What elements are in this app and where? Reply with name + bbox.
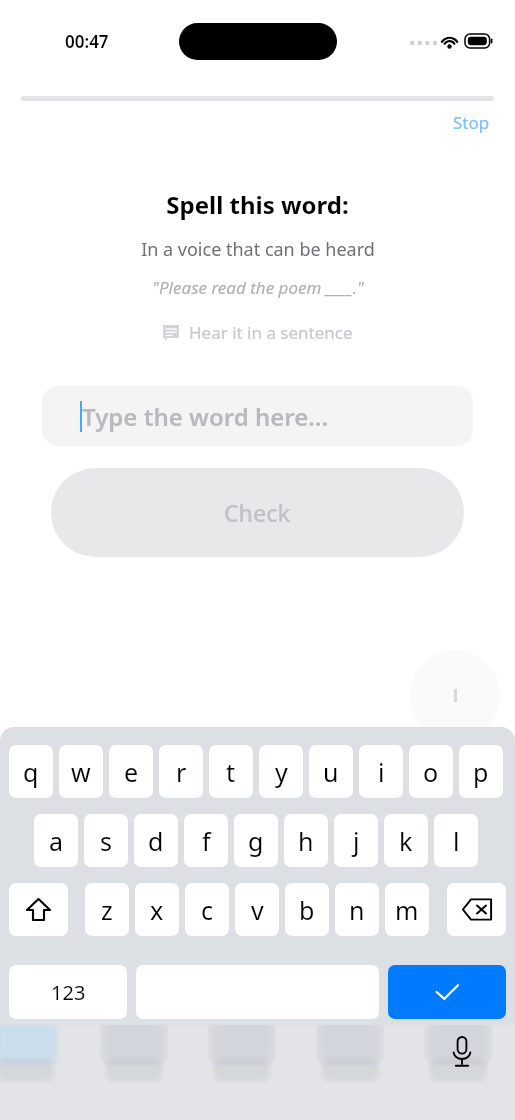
button[interactable]: Type the word here... — [42, 386, 473, 446]
staticText: Spell this word: — [166, 188, 349, 221]
button[interactable]: w — [59, 745, 103, 798]
button[interactable]: d — [134, 814, 178, 867]
button[interactable]: c — [185, 883, 229, 936]
button[interactable]: Hear it in a sentence — [156, 317, 359, 348]
staticText: a — [49, 824, 64, 858]
button[interactable]: u — [309, 745, 353, 798]
staticText: "Please read the poem ____." — [152, 276, 364, 299]
button[interactable]: a — [34, 814, 78, 867]
staticText: y — [275, 755, 288, 789]
button[interactable]: v — [235, 883, 279, 936]
staticText: Hear it in a sentence — [189, 321, 353, 344]
button[interactable]: Stop — [449, 108, 494, 137]
staticText: p — [473, 755, 489, 789]
staticText: s — [100, 824, 112, 858]
staticText: t — [226, 755, 236, 789]
button[interactable]: q — [9, 745, 53, 798]
button[interactable]: f — [184, 814, 228, 867]
staticText: o — [423, 755, 439, 789]
staticText: g — [248, 824, 264, 858]
button[interactable]: Microphone — [442, 1032, 482, 1072]
button[interactable]: Shift — [9, 883, 68, 936]
staticText: r — [176, 755, 187, 789]
button[interactable]: 123 — [9, 965, 127, 1019]
button[interactable]: y — [259, 745, 303, 798]
button[interactable]: i — [359, 745, 403, 798]
button[interactable]: Microphone — [410, 650, 500, 740]
staticText: In a voice that can be heard — [141, 237, 375, 262]
staticText: n — [349, 893, 365, 927]
staticText: q — [23, 755, 39, 789]
staticText: x — [150, 893, 164, 927]
staticText: k — [399, 824, 413, 858]
staticText: Type the word here... — [82, 400, 329, 433]
button[interactable]: s — [84, 814, 128, 867]
staticText: 00:47 — [65, 30, 109, 53]
button[interactable]: z — [85, 883, 129, 936]
staticText: b — [299, 893, 315, 927]
staticText: Check — [224, 497, 291, 528]
staticText: m — [395, 893, 419, 927]
staticText: d — [148, 824, 164, 858]
button[interactable]: o — [409, 745, 453, 798]
staticText: j — [353, 824, 360, 858]
staticText: e — [124, 755, 139, 789]
button[interactable]: k — [384, 814, 428, 867]
staticText: v — [251, 893, 264, 927]
staticText: f — [202, 824, 211, 858]
staticText: i — [378, 755, 385, 789]
staticText: u — [323, 755, 339, 789]
button[interactable]: p — [459, 745, 503, 798]
staticText: 123 — [51, 979, 86, 1006]
button[interactable]: h — [284, 814, 328, 867]
button[interactable]: g — [234, 814, 278, 867]
button[interactable]: n — [335, 883, 379, 936]
staticText: z — [101, 893, 113, 927]
button[interactable]: m — [385, 883, 429, 936]
staticText: Stop — [453, 111, 490, 134]
button[interactable]: Backspace — [447, 883, 506, 936]
staticText: w — [71, 755, 91, 789]
button[interactable]: r — [159, 745, 203, 798]
button[interactable]: t — [209, 745, 253, 798]
button[interactable]: Check — [51, 468, 464, 557]
button[interactable]: e — [109, 745, 153, 798]
button[interactable]: l — [434, 814, 478, 867]
button[interactable]: j — [334, 814, 378, 867]
button[interactable]: x — [135, 883, 179, 936]
staticText: h — [298, 824, 314, 858]
staticText: l — [453, 824, 460, 858]
button[interactable]: b — [285, 883, 329, 936]
button[interactable]: Enter — [388, 965, 506, 1019]
staticText: c — [201, 893, 214, 927]
